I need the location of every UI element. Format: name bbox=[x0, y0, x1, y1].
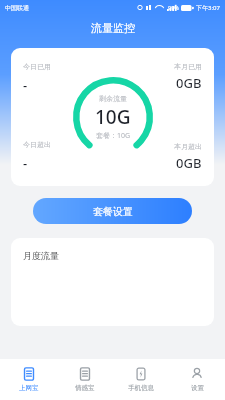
staticText: 流量监控 bbox=[91, 21, 135, 35]
staticText: 月度流量 bbox=[23, 250, 59, 261]
staticText: 今日超出 bbox=[23, 140, 51, 149]
staticText: 0GB bbox=[176, 74, 202, 92]
other: Phone info bbox=[134, 367, 148, 381]
staticText: 本月超出 bbox=[174, 142, 202, 151]
staticText: 中国联通 bbox=[5, 4, 29, 12]
button[interactable]: Document bbox=[0, 359, 57, 400]
staticText: - bbox=[23, 154, 28, 172]
staticText: 今日已用 bbox=[23, 62, 51, 71]
staticText: 套餐：10G bbox=[96, 131, 131, 141]
staticText: 99% bbox=[168, 4, 179, 11]
staticText: 下午3:07 bbox=[196, 4, 220, 12]
staticText: 10G bbox=[95, 104, 131, 130]
other: Settings bbox=[190, 367, 204, 381]
staticText: 剩余流量 bbox=[99, 94, 127, 103]
button[interactable]: Phone info bbox=[113, 359, 169, 400]
button[interactable]: Document bbox=[57, 359, 113, 400]
staticText: 本月已用 bbox=[174, 62, 202, 71]
staticText: 0GB bbox=[176, 154, 202, 172]
staticText: 手机信息 bbox=[128, 384, 154, 392]
staticText: 上网宝 bbox=[19, 384, 39, 392]
button[interactable]: 套餐设置 bbox=[33, 198, 192, 224]
button[interactable]: Settings bbox=[169, 359, 225, 400]
other: Document bbox=[78, 367, 92, 381]
other: Document bbox=[22, 367, 36, 381]
staticText: 套餐设置 bbox=[93, 205, 133, 218]
staticText: 情感宝 bbox=[75, 384, 95, 392]
staticText: 设置 bbox=[191, 384, 204, 392]
staticText: - bbox=[23, 76, 28, 94]
